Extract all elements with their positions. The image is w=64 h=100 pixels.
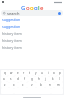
staticText: o: [30, 4, 34, 10]
staticText: j: [45, 77, 46, 81]
staticText: search: [7, 11, 20, 16]
button[interactable]: t: [27, 70, 33, 76]
staticText: k: [52, 77, 54, 81]
button[interactable]: k: [49, 76, 56, 82]
button[interactable]: u: [39, 70, 45, 76]
staticText: i: [48, 71, 49, 75]
button[interactable]: a: [1, 76, 7, 82]
button[interactable]: e: [15, 70, 21, 76]
button[interactable]: i: [45, 70, 51, 76]
button[interactable]: suggestion: [0, 16, 64, 23]
staticText: s: [10, 77, 12, 81]
button[interactable]: q: [1, 70, 8, 76]
button[interactable]: search: [1, 10, 63, 16]
staticText: y: [35, 71, 37, 75]
button[interactable]: p: [57, 70, 63, 76]
staticText: u: [41, 71, 43, 75]
staticText: z: [4, 83, 6, 87]
button[interactable]: y: [33, 70, 39, 76]
staticText: G: [21, 4, 26, 10]
button[interactable]: g: [28, 76, 35, 82]
staticText: x: [13, 83, 15, 87]
staticText: l: [59, 77, 60, 81]
staticText: q: [4, 71, 6, 75]
staticText: o: [53, 71, 55, 75]
button[interactable]: o: [51, 70, 57, 76]
button[interactable]: history item: [0, 37, 64, 44]
staticText: b: [40, 83, 42, 87]
button[interactable]: j: [42, 76, 49, 82]
staticText: n: [49, 83, 51, 87]
button[interactable]: l: [56, 76, 63, 82]
staticText: history item: [2, 38, 22, 43]
staticText: f: [24, 77, 26, 81]
button[interactable]: d: [14, 76, 21, 82]
button[interactable]: history item: [0, 30, 64, 37]
staticText: v: [31, 83, 33, 87]
staticText: o: [26, 4, 30, 10]
staticText: a: [3, 77, 5, 81]
staticText: d: [17, 77, 19, 81]
button[interactable]: w: [8, 70, 15, 76]
staticText: suggestion: [2, 17, 21, 22]
staticText: w: [10, 71, 13, 75]
staticText: p: [59, 71, 61, 75]
button[interactable]: v: [27, 82, 36, 88]
button[interactable]: m: [54, 82, 63, 88]
staticText: h: [38, 77, 40, 81]
button[interactable]: suggestion: [0, 23, 64, 30]
staticText: m: [57, 83, 60, 87]
staticText: l: [38, 4, 40, 10]
staticText: g: [34, 4, 38, 10]
button[interactable]: z: [1, 82, 9, 88]
button[interactable]: x: [9, 82, 18, 88]
staticText: r: [23, 71, 25, 75]
button[interactable]: f: [21, 76, 28, 82]
staticText: suggestion: [2, 24, 21, 29]
staticText: e: [17, 71, 19, 75]
button[interactable]: n: [45, 82, 54, 88]
staticText: g: [31, 77, 33, 81]
staticText: history item: [2, 45, 22, 50]
staticText: e: [40, 4, 44, 10]
staticText: history item: [2, 31, 22, 36]
button[interactable]: s: [7, 76, 14, 82]
button[interactable]: r: [21, 70, 27, 76]
button[interactable]: b: [36, 82, 45, 88]
staticText: t: [29, 71, 31, 75]
button[interactable]: c: [18, 82, 27, 88]
button[interactable]: history item: [0, 44, 64, 51]
staticText: c: [22, 83, 24, 87]
button[interactable]: h: [35, 76, 42, 82]
